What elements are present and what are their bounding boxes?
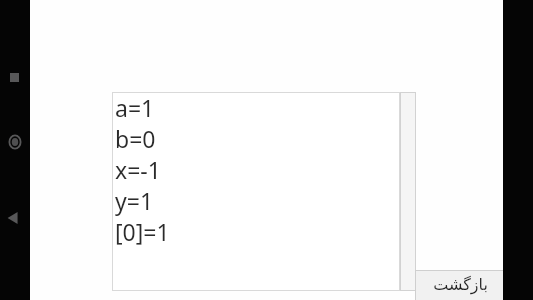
staticText: x=-1 xyxy=(115,154,161,185)
staticText: a=1 xyxy=(115,92,155,123)
button[interactable]: Home xyxy=(4,131,25,152)
button[interactable]: Recent apps xyxy=(5,68,24,87)
staticText: y=1 xyxy=(115,185,154,216)
button[interactable]: بازگشت xyxy=(415,270,505,300)
staticText: بازگشت xyxy=(433,275,488,294)
button[interactable]: Scroll xyxy=(400,92,416,291)
staticText: [0]=1 xyxy=(115,216,170,247)
button[interactable]: a=1 xyxy=(112,92,400,291)
staticText: b=0 xyxy=(115,123,156,154)
button[interactable]: Back xyxy=(3,208,23,228)
